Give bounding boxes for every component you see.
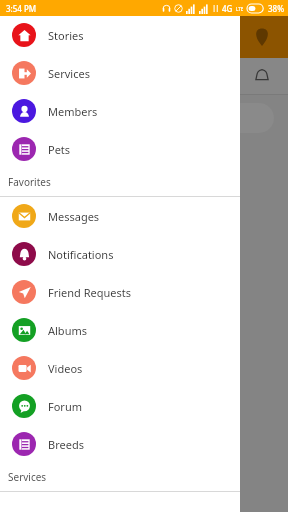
button[interactable]: Services <box>0 54 240 92</box>
staticText: Favorites <box>8 175 51 189</box>
button[interactable]: Notifications <box>0 235 240 273</box>
button[interactable]: Albums <box>0 311 240 349</box>
staticText: Services <box>8 470 47 484</box>
button[interactable]: Pets <box>0 130 240 168</box>
button[interactable]: Messages <box>0 197 240 235</box>
button[interactable]: Friend Requests <box>0 273 240 311</box>
staticText: Forum <box>48 399 82 414</box>
staticText: Albums <box>48 323 87 338</box>
button[interactable]: Stories <box>0 16 240 54</box>
button[interactable]: Videos <box>0 349 240 387</box>
button[interactable]: Groomers <box>0 147 288 244</box>
button[interactable]: Notifications <box>254 68 270 84</box>
staticText: Breeds <box>48 437 84 452</box>
staticText: Services <box>48 66 90 81</box>
staticText: Friend Requests <box>48 285 132 300</box>
staticText: 3:54 PM <box>6 3 37 14</box>
button[interactable]: Members <box>0 92 240 130</box>
button[interactable]: Lost & Found <box>0 341 288 438</box>
staticText: 38% <box>268 3 284 14</box>
staticText: Pets <box>48 142 71 157</box>
staticText: Notifications <box>48 247 114 262</box>
button[interactable]: Vets <box>0 438 288 512</box>
staticText: LTE <box>236 6 244 12</box>
button[interactable]: Favorites <box>0 168 240 196</box>
staticText: Videos <box>48 361 83 376</box>
button[interactable]: Forum <box>0 387 240 425</box>
staticText: Messages <box>48 209 100 224</box>
button[interactable] <box>14 103 274 133</box>
button[interactable]: Services <box>0 463 240 491</box>
button[interactable]: Walkers <box>0 244 288 341</box>
staticText: Stories <box>48 28 84 43</box>
button[interactable]: Location <box>252 27 272 47</box>
button[interactable]: Breeds <box>0 425 240 463</box>
staticText: Members <box>48 104 98 119</box>
staticText: 4G <box>222 3 233 14</box>
